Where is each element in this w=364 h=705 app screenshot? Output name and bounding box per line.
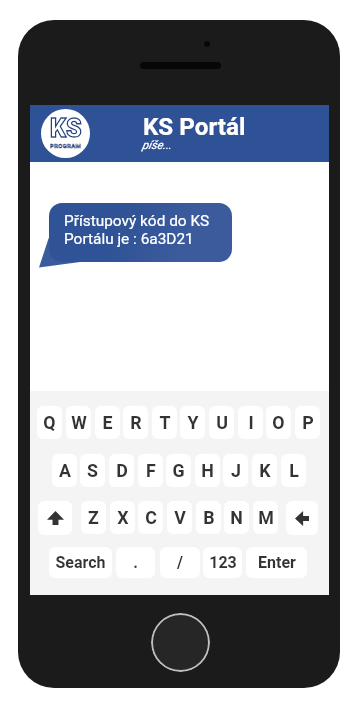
staticText: N bbox=[230, 507, 243, 528]
button[interactable]: M bbox=[253, 501, 278, 534]
staticText: H bbox=[201, 460, 214, 481]
button[interactable]: F bbox=[138, 454, 163, 487]
staticText: C bbox=[145, 507, 157, 528]
button[interactable]: J bbox=[223, 454, 248, 487]
button[interactable]: Enter bbox=[246, 547, 307, 578]
staticText: O bbox=[272, 412, 285, 433]
button[interactable]: KS bbox=[30, 105, 329, 162]
staticText: KS bbox=[50, 114, 82, 143]
button[interactable]: E bbox=[95, 406, 120, 439]
button[interactable]: Přístupový kód do KS bbox=[49, 203, 232, 262]
staticText: Enter bbox=[258, 553, 296, 572]
button[interactable]: D bbox=[109, 454, 134, 487]
staticText: Z bbox=[88, 507, 99, 528]
staticText: D bbox=[116, 460, 128, 481]
button[interactable]: Backspace bbox=[286, 501, 318, 535]
staticText: Portálu je : 6a3D21 bbox=[64, 230, 194, 248]
button[interactable]: / bbox=[160, 547, 200, 578]
button[interactable]: Z bbox=[81, 501, 106, 534]
staticText: L bbox=[289, 460, 299, 481]
staticText: G bbox=[172, 460, 185, 481]
staticText: / bbox=[177, 553, 183, 572]
staticText: V bbox=[174, 507, 186, 528]
button[interactable]: R bbox=[123, 406, 148, 439]
staticText: píše... bbox=[142, 138, 172, 151]
staticText: Q bbox=[43, 412, 56, 433]
button[interactable]: Home bbox=[151, 613, 210, 672]
staticText: J bbox=[231, 460, 241, 481]
button[interactable]: G bbox=[166, 454, 191, 487]
staticText: F bbox=[146, 460, 156, 481]
button[interactable]: K bbox=[252, 454, 277, 487]
button[interactable]: H bbox=[195, 454, 220, 487]
button[interactable]: 123 bbox=[203, 547, 242, 578]
button[interactable]: U bbox=[209, 406, 234, 439]
button[interactable]: Shift bbox=[38, 501, 72, 535]
button[interactable]: L bbox=[281, 454, 306, 487]
staticText: 123 bbox=[209, 553, 237, 572]
staticText: Y bbox=[187, 412, 199, 433]
staticText: E bbox=[102, 412, 113, 433]
staticText: KS Portál bbox=[143, 113, 246, 141]
button[interactable]: T bbox=[152, 406, 177, 439]
button[interactable]: A bbox=[52, 454, 77, 487]
button[interactable]: P bbox=[295, 406, 320, 439]
button[interactable]: V bbox=[167, 501, 192, 534]
staticText: Přístupový kód do KS bbox=[64, 212, 210, 230]
staticText: U bbox=[216, 412, 228, 433]
staticText: I bbox=[248, 412, 254, 433]
staticText: PROGRAM bbox=[50, 142, 82, 149]
button[interactable]: . bbox=[116, 547, 155, 578]
button[interactable]: S bbox=[80, 454, 105, 487]
button[interactable]: Y bbox=[180, 406, 205, 439]
button[interactable]: W bbox=[66, 406, 91, 439]
staticText: Search bbox=[55, 553, 106, 572]
staticText: P bbox=[302, 412, 314, 433]
button[interactable]: O bbox=[266, 406, 291, 439]
staticText: KS bbox=[50, 114, 82, 143]
staticText: W bbox=[71, 412, 87, 433]
staticText: S bbox=[87, 460, 98, 481]
button[interactable]: N bbox=[224, 501, 249, 534]
staticText: T bbox=[159, 412, 171, 433]
button[interactable]: X bbox=[110, 501, 135, 534]
button[interactable]: B bbox=[196, 501, 221, 534]
staticText: K bbox=[259, 460, 271, 481]
staticText: B bbox=[203, 507, 215, 528]
staticText: . bbox=[133, 553, 138, 572]
staticText: X bbox=[117, 507, 129, 528]
staticText: M bbox=[258, 507, 274, 528]
staticText: R bbox=[130, 412, 142, 433]
button[interactable]: Search bbox=[49, 547, 112, 578]
staticText: A bbox=[59, 460, 71, 481]
button[interactable]: C bbox=[138, 501, 163, 534]
button[interactable]: I bbox=[238, 406, 263, 439]
staticText: PROGRAM bbox=[50, 142, 82, 149]
button[interactable]: Q bbox=[37, 406, 62, 439]
